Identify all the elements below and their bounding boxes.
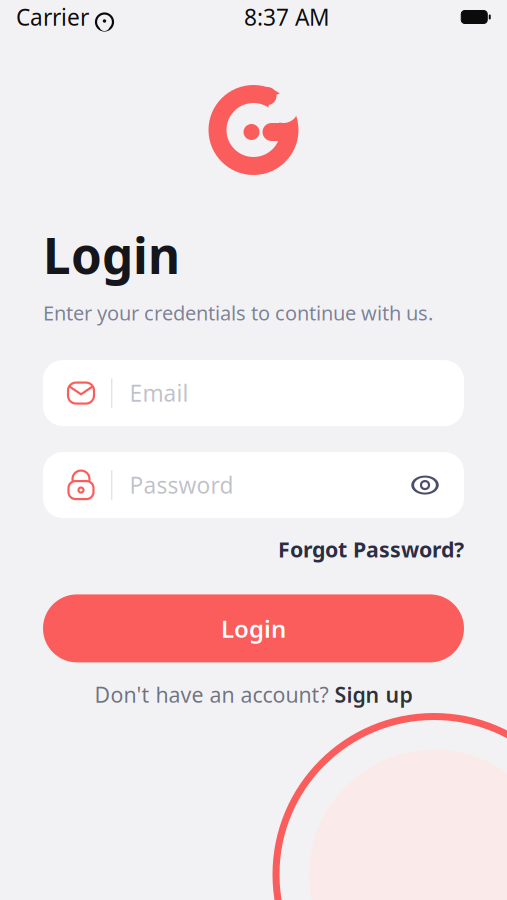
staticText: Email: [129, 378, 188, 408]
staticText: Login: [221, 612, 286, 644]
staticText: Carrier: [16, 2, 89, 32]
staticText: Enter your credentials to continue with …: [43, 299, 433, 326]
button[interactable]: Forgot Password?: [278, 535, 464, 563]
staticText: 8:37 AM: [244, 2, 330, 32]
button[interactable]: Don't have an account?: [94, 680, 412, 709]
staticText: Password: [129, 470, 233, 500]
staticText: Login: [43, 222, 180, 287]
staticText: Don't have an account?: [94, 680, 334, 709]
button[interactable]: Password: [43, 452, 464, 518]
button[interactable]: Login: [43, 594, 464, 662]
button[interactable]: Email: [43, 360, 464, 426]
staticText: Forgot Password?: [278, 535, 464, 563]
staticText: Sign up: [334, 680, 412, 709]
